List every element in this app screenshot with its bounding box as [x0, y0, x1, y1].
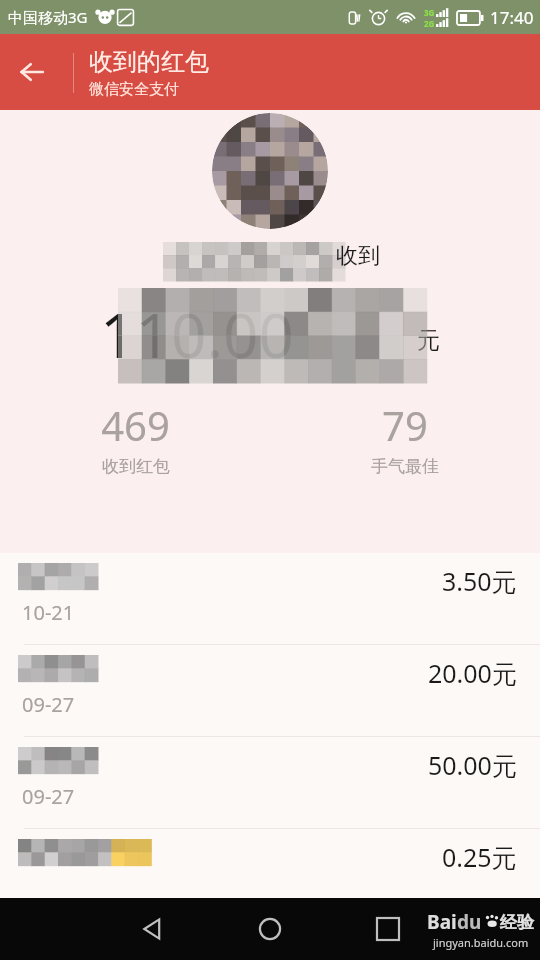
- staticText: 3G: [424, 7, 435, 18]
- button[interactable]: Home: [240, 899, 300, 959]
- staticText: 经验: [500, 912, 534, 933]
- staticText: 微信安全支付: [89, 80, 179, 99]
- staticText: du: [457, 909, 482, 935]
- button[interactable]: 09-27: [0, 644, 540, 736]
- staticText: 收到: [336, 242, 380, 270]
- button[interactable]: Back: [0, 34, 64, 110]
- staticText: Bai: [427, 909, 457, 935]
- staticText: 中国移动3G: [8, 7, 88, 27]
- button[interactable]: 09-27: [0, 736, 540, 828]
- staticText: jingyan.baidu.com: [433, 935, 529, 950]
- staticText: 09-27: [22, 691, 75, 718]
- staticText: 110.00: [100, 292, 294, 376]
- button[interactable]: Back: [122, 899, 182, 959]
- button[interactable]: 79: [270, 398, 540, 477]
- staticText: 50.00元: [428, 748, 517, 782]
- staticText: 17:40: [490, 6, 534, 29]
- staticText: 元: [417, 326, 440, 355]
- button[interactable]: 469: [0, 398, 270, 477]
- button[interactable]: 0.25元: [0, 828, 540, 877]
- staticText: 收到红包: [102, 456, 170, 477]
- button[interactable]: Avatar: [212, 113, 328, 229]
- button[interactable]: Recent apps: [358, 899, 418, 959]
- staticText: 0.25元: [442, 840, 517, 874]
- staticText: 20.00元: [428, 656, 517, 690]
- staticText: 09-27: [22, 783, 75, 810]
- staticText: 10-21: [22, 599, 75, 626]
- staticText: 79: [382, 398, 428, 452]
- staticText: 收到的红包: [89, 47, 209, 77]
- staticText: 手气最佳: [371, 456, 439, 477]
- button[interactable]: 10-21: [0, 553, 540, 644]
- staticText: 469: [101, 398, 170, 452]
- staticText: 3.50元: [442, 564, 517, 598]
- staticText: 2G: [424, 18, 435, 29]
